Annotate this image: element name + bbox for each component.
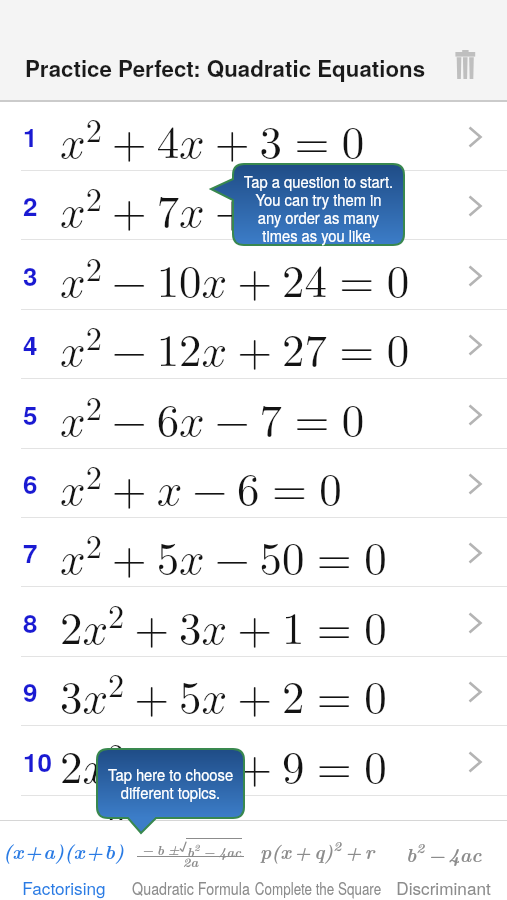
staticText: 6 — [23, 465, 38, 502]
button[interactable]: 9 — [0, 657, 507, 726]
staticText: 3𝑥2 − 10𝑥 + 8 = 0 — [60, 810, 410, 861]
staticText: Tap here to choose different topics. — [104, 762, 237, 803]
staticText: Tap a question to start. You can try the… — [241, 169, 396, 246]
button[interactable]: Delete — [448, 45, 484, 85]
staticText: 5 — [23, 396, 38, 433]
staticText: 11 — [23, 812, 52, 849]
staticText: b2 − 4ac — [406, 837, 482, 868]
button[interactable]: 8 — [0, 588, 507, 657]
staticText: Discriminant — [396, 875, 491, 900]
staticText: 2𝑥2 + 9𝑥 + 9 = 0 — [60, 741, 387, 792]
button[interactable]: 10 — [0, 727, 507, 796]
staticText: 𝑥2 + 4𝑥 + 3 = 0 — [60, 116, 365, 167]
staticText: 1 — [23, 118, 38, 155]
button[interactable]: 1 — [0, 102, 507, 171]
staticText: 𝑥2 + 𝑥 − 6 = 0 — [60, 463, 342, 514]
button[interactable]: b2 − 4ac — [380, 820, 507, 900]
staticText: 2 — [23, 187, 38, 224]
staticText: 7 — [23, 534, 38, 571]
staticText: 𝑥2 + 7𝑥 + 10 = 0 — [60, 185, 387, 236]
button[interactable]: 5 — [0, 380, 507, 449]
staticText: 𝑥2 − 10𝑥 + 24 = 0 — [60, 255, 410, 306]
staticText: Quadratic Formula — [132, 875, 250, 900]
staticText: 𝑥2 + 5𝑥 − 50 = 0 — [60, 532, 387, 583]
staticText: 4 — [23, 326, 38, 363]
staticText: 𝑥2 − 12𝑥 + 27 = 0 — [60, 324, 410, 375]
staticText: (x + a)(x + b) — [3, 837, 125, 865]
button[interactable]: 7 — [0, 518, 507, 587]
button[interactable]: 6 — [0, 449, 507, 518]
staticText: 𝑥2 − 6𝑥 − 7 = 0 — [60, 394, 365, 445]
button[interactable]: − b ± — [127, 820, 254, 900]
button[interactable]: 4 — [0, 310, 507, 379]
staticText: Complete the Square — [255, 875, 381, 900]
staticText: 2𝑥2 + 3𝑥 + 1 = 0 — [60, 602, 387, 653]
staticText: − b ± — [138, 840, 183, 859]
staticText: Practice Perfect: Quadratic Equations — [25, 52, 426, 84]
staticText: 8 — [23, 604, 38, 641]
staticText: b2 − 4ac — [187, 840, 242, 861]
staticText: Factorising — [22, 875, 106, 900]
button[interactable]: (x + a)(x + b) — [0, 820, 127, 900]
button[interactable]: 11 — [0, 796, 507, 865]
staticText: 3 — [23, 257, 38, 294]
staticText: 3𝑥2 + 5𝑥 + 2 = 0 — [60, 671, 387, 722]
button[interactable]: 3 — [0, 241, 507, 310]
button[interactable]: 2 — [0, 171, 507, 240]
button[interactable]: p(x + q)2 + r — [254, 820, 381, 900]
staticText: 2a — [137, 852, 244, 871]
staticText: 10 — [23, 743, 52, 780]
staticText: 9 — [23, 673, 38, 710]
staticText: p(x + q)2 + r — [260, 835, 375, 865]
